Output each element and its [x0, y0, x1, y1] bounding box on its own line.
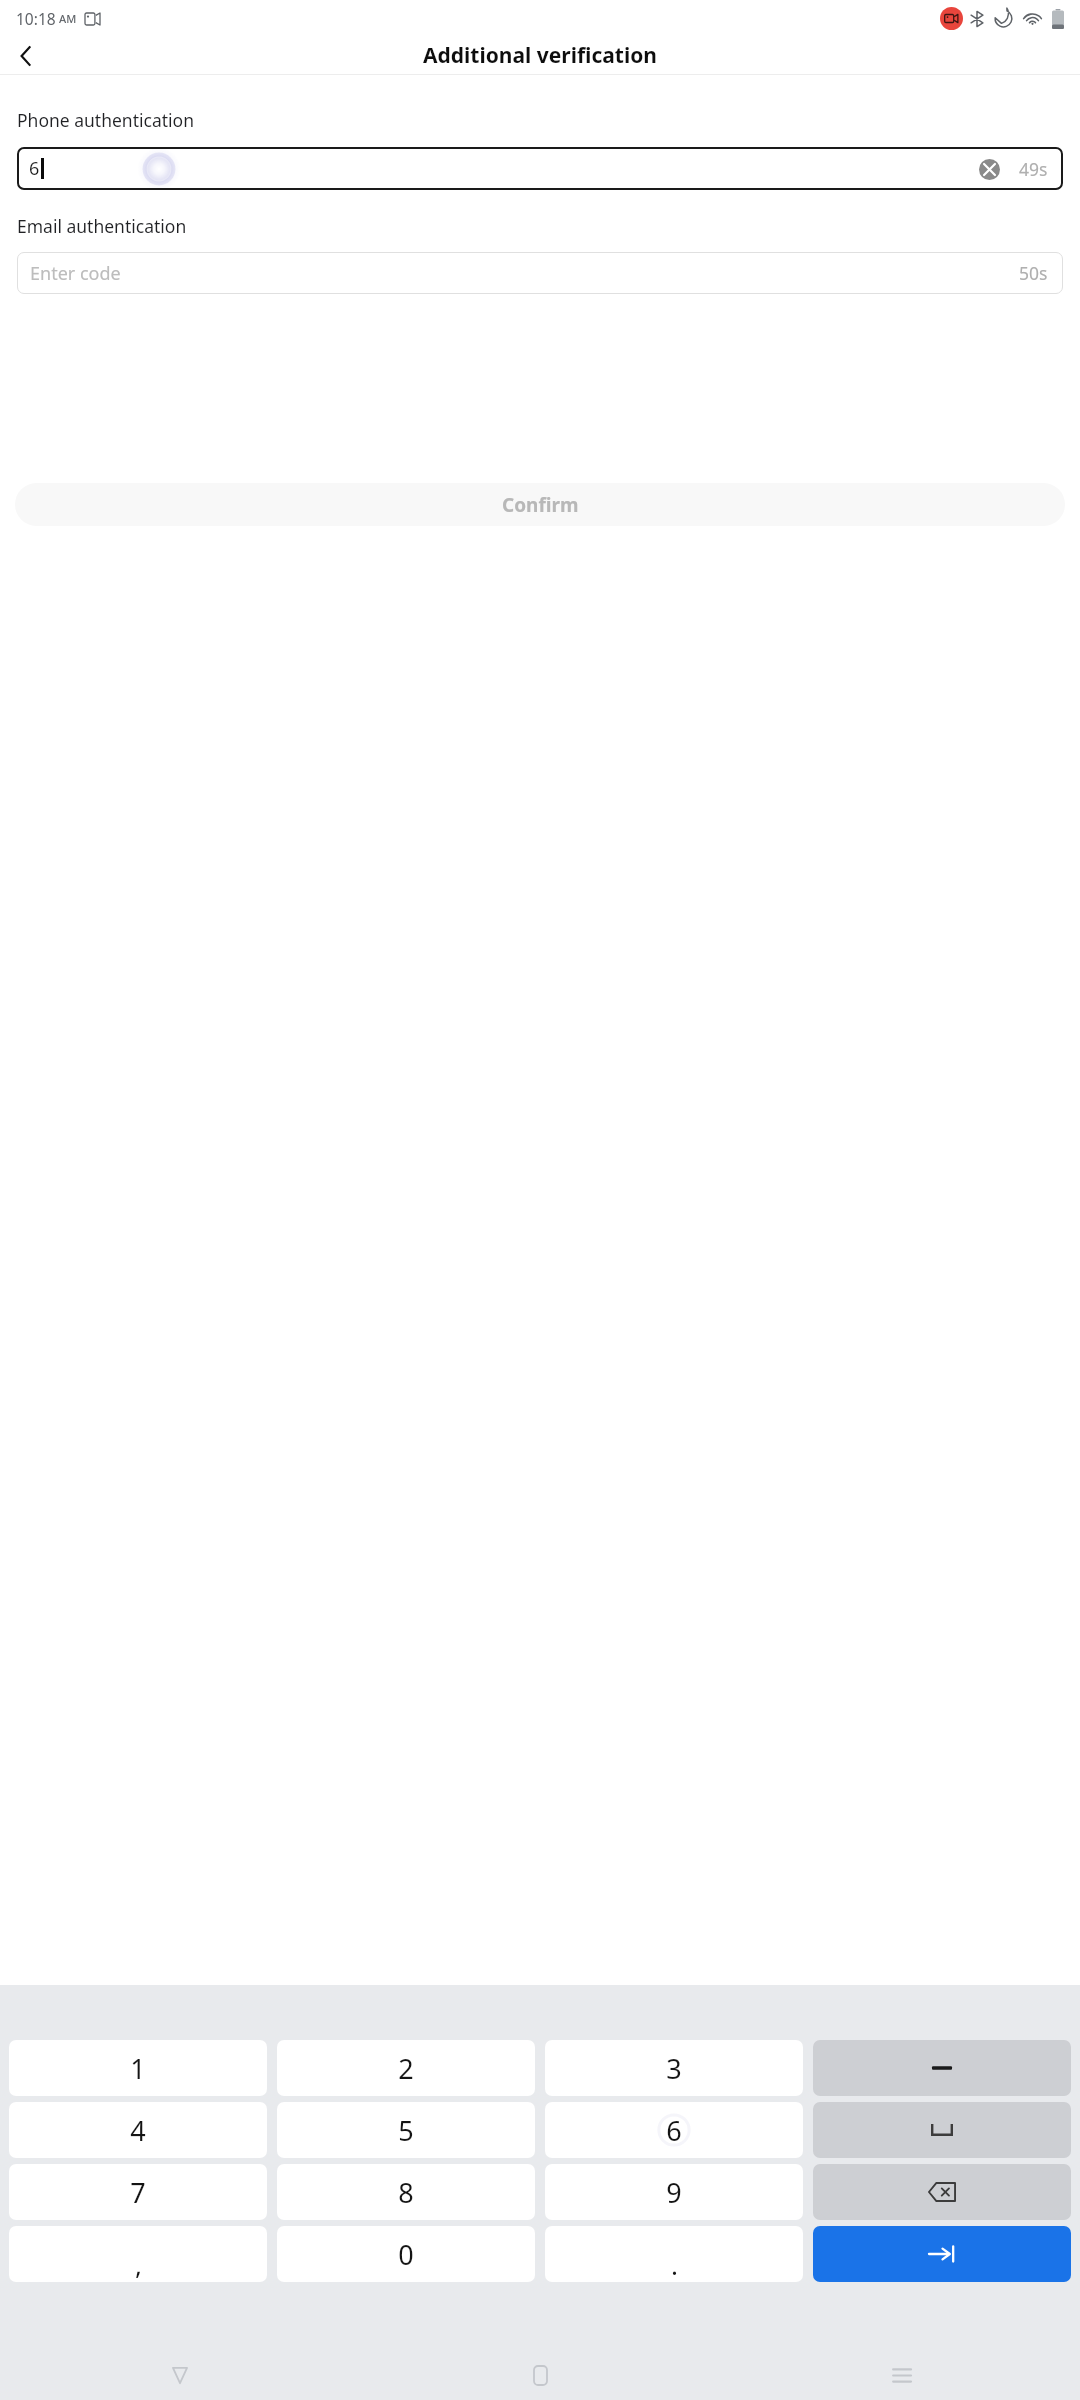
staticText: 50s [1019, 261, 1048, 285]
button[interactable]: Comma [9, 2226, 267, 2282]
button[interactable]: 8 [277, 2164, 535, 2220]
button[interactable]: 3 [545, 2040, 803, 2096]
button[interactable]: 2 [277, 2040, 535, 2096]
staticText: 4 [130, 2112, 146, 2149]
button[interactable]: 6 [545, 2102, 803, 2158]
button[interactable]: Confirm [15, 483, 1065, 526]
staticText: 9 [666, 2174, 682, 2211]
button[interactable]: 0 [277, 2226, 535, 2282]
staticText: 7 [130, 2174, 146, 2211]
button[interactable]: 1 [9, 2040, 267, 2096]
button[interactable]: Backspace [813, 2164, 1071, 2220]
button[interactable]: 6 [17, 147, 1063, 190]
staticText: 0 [398, 2236, 414, 2273]
staticText: Enter code [30, 261, 121, 286]
staticText: 10:18 [16, 8, 56, 29]
staticText: Email authentication [17, 214, 187, 238]
button[interactable]: Period [545, 2226, 803, 2282]
button[interactable]: Space [813, 2102, 1071, 2158]
button[interactable]: 9 [545, 2164, 803, 2220]
button[interactable]: Clear [976, 156, 1002, 182]
staticText: 2 [398, 2050, 414, 2087]
staticText: 6 [29, 156, 40, 181]
staticText: 8 [398, 2174, 414, 2211]
staticText: 3 [666, 2050, 682, 2087]
staticText: 5 [398, 2112, 414, 2149]
staticText: 1 [130, 2050, 146, 2087]
staticText: . [671, 2247, 678, 2282]
button[interactable]: Enter code [17, 252, 1063, 294]
button[interactable]: 5 [277, 2102, 535, 2158]
button[interactable]: Minus [813, 2040, 1071, 2096]
staticText: Confirm [502, 492, 579, 518]
button[interactable]: Enter [813, 2226, 1071, 2282]
button[interactable]: 4 [9, 2102, 267, 2158]
staticText: , [135, 2247, 142, 2282]
staticText: 49s [1019, 157, 1048, 181]
staticText: Phone authentication [17, 108, 194, 132]
staticText: AM [59, 11, 77, 26]
button[interactable]: 7 [9, 2164, 267, 2220]
button[interactable]: Back [4, 37, 48, 74]
staticText: Additional verification [423, 41, 657, 70]
staticText: 6 [666, 2112, 682, 2149]
